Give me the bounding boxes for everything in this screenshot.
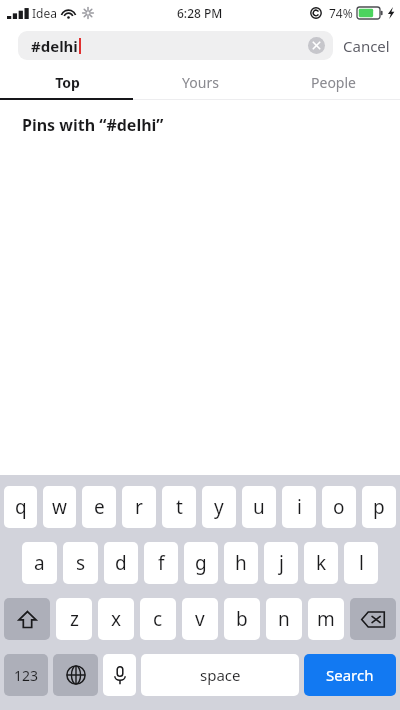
staticText: space: [200, 665, 241, 685]
staticText: Idea: [32, 5, 57, 21]
staticText: p: [373, 494, 385, 520]
button[interactable]: p: [362, 486, 396, 528]
staticText: Cancel: [343, 36, 390, 56]
button[interactable]: l: [344, 542, 378, 584]
staticText: j: [279, 550, 284, 576]
staticText: k: [316, 550, 327, 576]
button[interactable]: m: [308, 598, 344, 640]
staticText: Pins with “#delhi”: [22, 114, 164, 136]
staticText: y: [214, 494, 224, 520]
staticText: i: [297, 494, 302, 520]
button[interactable]: n: [266, 598, 302, 640]
staticText: 6:28 PM: [177, 5, 223, 21]
staticText: r: [135, 494, 143, 520]
button[interactable]: Cancel: [343, 31, 390, 60]
staticText: u: [253, 494, 265, 520]
staticText: w: [52, 494, 67, 520]
button[interactable]: k: [304, 542, 338, 584]
staticText: Search: [326, 665, 374, 685]
button[interactable]: v: [182, 598, 218, 640]
button[interactable]: o: [322, 486, 356, 528]
staticText: People: [311, 73, 356, 92]
button[interactable]: People: [267, 66, 400, 98]
button[interactable]: y: [202, 486, 236, 528]
staticText: l: [359, 550, 364, 576]
staticText: q: [15, 494, 27, 520]
button[interactable]: e: [82, 486, 116, 528]
button[interactable]: a: [22, 542, 57, 584]
button[interactable]: z: [56, 598, 92, 640]
button[interactable]: i: [282, 486, 316, 528]
staticText: Yours: [182, 73, 219, 92]
button[interactable]: h: [224, 542, 258, 584]
staticText: z: [70, 606, 79, 632]
button[interactable]: u: [242, 486, 276, 528]
button[interactable]: t: [162, 486, 196, 528]
button[interactable]: 123: [4, 654, 48, 696]
button[interactable]: g: [184, 542, 218, 584]
staticText: m: [317, 606, 335, 632]
staticText: e: [94, 494, 105, 520]
staticText: t: [176, 494, 183, 520]
button[interactable]: b: [224, 598, 260, 640]
staticText: 74%: [329, 5, 353, 21]
staticText: x: [111, 606, 122, 632]
staticText: s: [76, 550, 86, 576]
button[interactable]: Shift: [4, 598, 50, 640]
button[interactable]: Yours: [134, 66, 267, 98]
staticText: Top: [55, 73, 80, 92]
staticText: g: [195, 550, 207, 576]
staticText: v: [195, 606, 205, 632]
staticText: #delhi: [31, 36, 78, 56]
button[interactable]: #delhi: [18, 31, 333, 60]
button[interactable]: x: [98, 598, 134, 640]
button[interactable]: Search: [304, 654, 396, 696]
button[interactable]: s: [63, 542, 98, 584]
staticText: n: [278, 606, 290, 632]
staticText: c: [153, 606, 163, 632]
staticText: h: [235, 550, 247, 576]
staticText: b: [236, 606, 248, 632]
button[interactable]: Voice input: [103, 654, 136, 696]
button[interactable]: d: [104, 542, 138, 584]
button[interactable]: j: [264, 542, 298, 584]
button[interactable]: r: [122, 486, 156, 528]
staticText: f: [158, 550, 165, 576]
button[interactable]: Change keyboard language: [53, 654, 98, 696]
button[interactable]: Backspace: [350, 598, 396, 640]
button[interactable]: q: [4, 486, 37, 528]
button[interactable]: w: [43, 486, 76, 528]
staticText: 123: [14, 666, 39, 685]
button[interactable]: f: [144, 542, 178, 584]
button[interactable]: Clear text: [308, 37, 325, 54]
staticText: d: [115, 550, 127, 576]
button[interactable]: Top: [0, 66, 134, 98]
staticText: a: [34, 550, 45, 576]
staticText: o: [333, 494, 345, 520]
button[interactable]: space: [141, 654, 299, 696]
button[interactable]: c: [140, 598, 176, 640]
